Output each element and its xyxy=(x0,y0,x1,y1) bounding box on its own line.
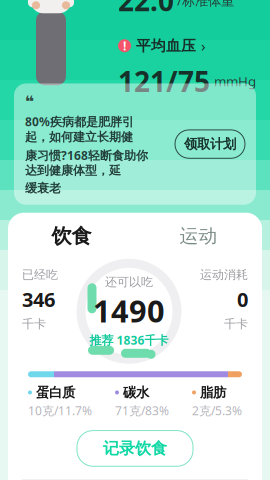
button[interactable]: 运动 xyxy=(135,213,262,258)
staticText: 千卡 xyxy=(224,317,248,331)
staticText: 记录饮食 xyxy=(103,439,167,458)
staticText: › xyxy=(201,36,206,55)
staticText: 2克/5.3% xyxy=(192,403,242,419)
staticText: 缓衰老 xyxy=(25,181,61,196)
staticText: 平均血压 xyxy=(136,37,196,55)
staticText: 脂肪 xyxy=(200,384,226,401)
staticText: 运动消耗 xyxy=(200,267,248,282)
staticText: /标准体重 xyxy=(177,0,234,9)
staticText: 还可以吃 xyxy=(105,275,153,289)
staticText: 已经吃 xyxy=(22,267,58,282)
staticText: 推荐 1836千卡 xyxy=(89,332,168,348)
staticText: ! xyxy=(123,38,126,54)
button[interactable]: 领取计划 xyxy=(175,130,245,158)
staticText: 碳水 xyxy=(123,384,149,401)
staticText: ❝ xyxy=(25,92,34,111)
staticText: 运动 xyxy=(179,224,217,247)
button[interactable]: 饮食 xyxy=(8,213,135,259)
staticText: 0 xyxy=(237,286,248,313)
staticText: 蛋白质 xyxy=(36,384,75,401)
staticText: 121/75 xyxy=(118,62,210,100)
staticText: 康习惯?168轻断食助你达到健康体型，延 xyxy=(25,147,148,178)
staticText: mmHg xyxy=(214,72,256,90)
staticText: 71克/83% xyxy=(115,403,169,419)
button[interactable]: ! xyxy=(118,36,206,55)
staticText: 千卡 xyxy=(22,317,46,331)
staticText: 1490 xyxy=(93,290,165,331)
staticText: 饮食 xyxy=(51,224,91,248)
staticText: 80%疾病都是肥胖引起，如何建立长期健 xyxy=(25,114,134,144)
button[interactable]: 记录饮食 xyxy=(77,431,193,466)
staticText: 10克/11.7% xyxy=(28,403,92,419)
staticText: 22.0 xyxy=(118,0,174,19)
staticText: 领取计划 xyxy=(184,136,236,152)
staticText: 346 xyxy=(22,286,55,313)
